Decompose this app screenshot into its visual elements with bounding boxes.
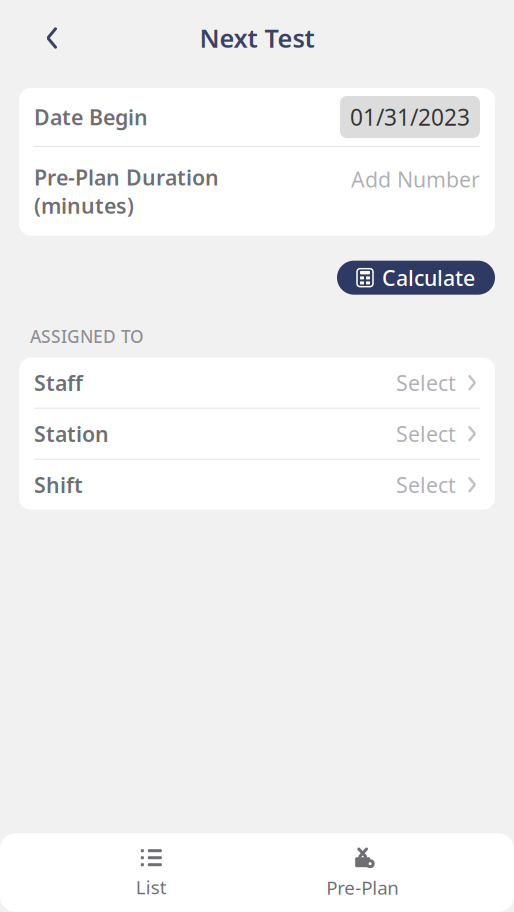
- staticText: Calculate: [382, 263, 475, 292]
- staticText: Add Number: [351, 165, 480, 193]
- staticText: 01/31/2023: [350, 102, 470, 132]
- button[interactable]: Station: [19, 409, 495, 459]
- staticText: ASSIGNED TO: [30, 325, 144, 348]
- staticText: Pre-Plan: [326, 875, 399, 900]
- staticText: Select: [396, 470, 456, 499]
- staticText: Station: [34, 419, 109, 448]
- staticText: Date Begin: [34, 103, 148, 131]
- staticText: Shift: [34, 470, 83, 499]
- button[interactable]: List: [91, 848, 211, 899]
- button[interactable]: Add Number: [351, 163, 480, 193]
- staticText: Select: [396, 368, 456, 397]
- button[interactable]: Calculate: [337, 261, 495, 295]
- staticText: List: [136, 875, 167, 899]
- button[interactable]: Staff: [19, 358, 495, 408]
- staticText: Select: [396, 419, 456, 448]
- button[interactable]: Pre-Plan: [303, 847, 423, 900]
- staticText: Staff: [34, 368, 83, 397]
- button[interactable]: Shift: [19, 460, 495, 510]
- button[interactable]: Back: [30, 16, 74, 60]
- staticText: Pre-Plan Duration (minutes): [34, 163, 219, 220]
- staticText: Next Test: [199, 21, 314, 55]
- button[interactable]: 01/31/2023: [340, 96, 480, 138]
